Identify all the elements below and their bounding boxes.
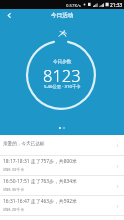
button[interactable]: 18:17-18:31 走了757步，共800米 (0, 156, 124, 176)
staticText: 消耗 35千卡 (3, 187, 25, 192)
staticText: 5.46公里 · 310千卡 (44, 83, 81, 89)
staticText: 消耗 20千卡 (3, 207, 25, 212)
button[interactable]: 亲爱的，今天已达标 (0, 135, 124, 155)
staticText: 8123 (43, 64, 81, 86)
staticText: 18:17-18:31 走了757步，共800米 (3, 158, 77, 165)
staticText: 亲爱的，今天已达标 (3, 141, 45, 147)
staticText: 消耗 33千卡 (3, 167, 25, 172)
staticText: 今日活动 (51, 12, 74, 19)
staticText: 今日步数 (53, 59, 72, 65)
staticText: 16:31-16:47 走了463步，共592米 (3, 198, 77, 205)
button[interactable]: 16:50-17:51 走了763步，共834米 (0, 176, 124, 196)
staticText: 21:33 (110, 2, 123, 9)
button[interactable]: Back (2, 9, 17, 22)
staticText: 0.57K/s (66, 2, 81, 8)
staticText: 16:50-17:51 走了763步，共834米 (3, 178, 77, 185)
button[interactable]: 16:31-16:47 走了463步，共592米 (0, 196, 124, 216)
